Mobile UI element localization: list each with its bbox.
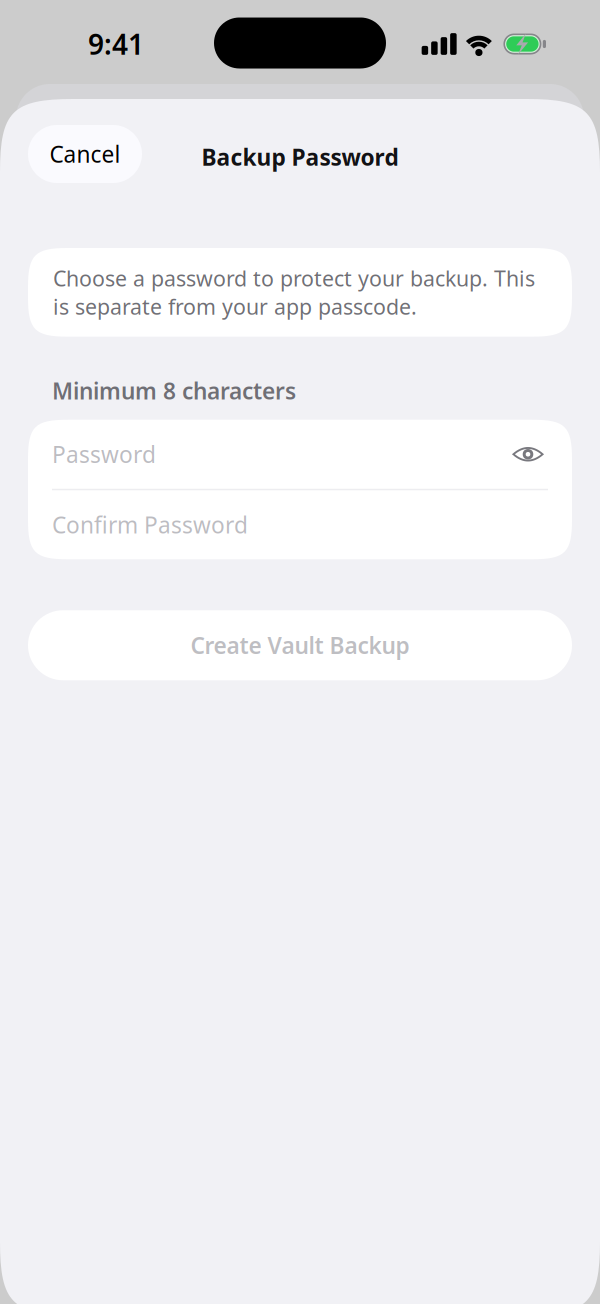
button[interactable]: Confirm Password xyxy=(28,490,572,559)
staticText: Choose a password to protect your backup… xyxy=(53,264,535,321)
staticText: 9:41 xyxy=(88,25,144,63)
staticText: Password xyxy=(52,439,156,469)
staticText: Create Vault Backup xyxy=(190,630,409,660)
button[interactable]: Cancel xyxy=(28,125,142,183)
button[interactable]: Show password xyxy=(505,431,551,477)
staticText: Backup Password xyxy=(201,142,398,172)
button[interactable]: Create Vault Backup xyxy=(28,610,572,680)
staticText: Minimum 8 characters xyxy=(52,376,296,406)
staticText: Confirm Password xyxy=(52,510,248,540)
staticText: Cancel xyxy=(49,139,120,169)
button[interactable]: Password xyxy=(28,420,572,489)
